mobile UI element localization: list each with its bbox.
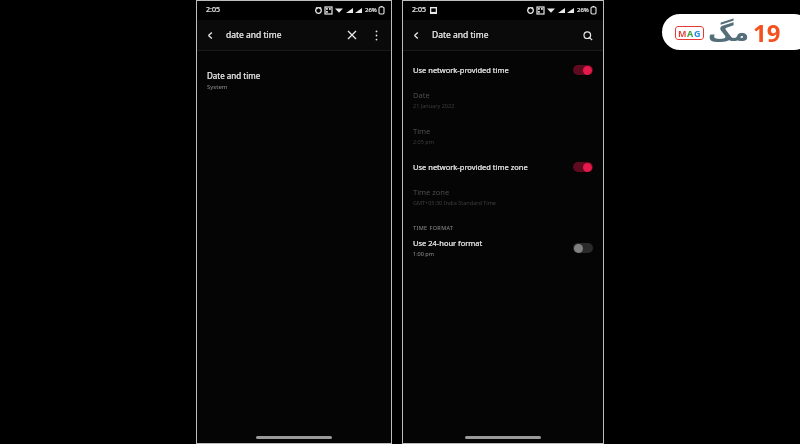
staticText: Date and time <box>432 29 489 41</box>
staticText: مگ <box>708 18 750 47</box>
button[interactable]: Toggle on <box>573 162 593 172</box>
staticText: 21 January 2022 <box>413 102 455 109</box>
staticText: 2:05 <box>206 5 220 15</box>
button[interactable]: Back <box>411 30 422 41</box>
staticText: G <box>694 27 701 39</box>
staticText: M <box>678 27 687 39</box>
button[interactable]: Time <box>402 126 604 145</box>
staticText: 2:05 <box>412 5 426 15</box>
staticText: Use network-provided time <box>413 65 573 75</box>
button[interactable]: Search <box>580 28 595 43</box>
button[interactable]: Date and time <box>196 68 392 93</box>
staticText: 2:05 pm <box>413 138 434 145</box>
staticText: 26% <box>365 6 377 14</box>
button[interactable]: Clear <box>345 28 359 42</box>
button[interactable]: Date <box>402 90 604 109</box>
button[interactable]: Toggle off <box>573 243 593 253</box>
button[interactable]: Toggle on <box>573 65 593 75</box>
button[interactable]: Use network-provided time <box>402 65 604 75</box>
staticText: System <box>207 83 228 91</box>
staticText: A <box>687 27 694 39</box>
staticText: Time <box>413 126 431 136</box>
staticText: Use 24-hour format <box>413 238 483 248</box>
staticText: Date <box>413 90 430 100</box>
button[interactable]: Time zone <box>402 187 604 206</box>
staticText: 19 <box>753 16 781 49</box>
staticText: GMT+05:30 India Standard Time <box>413 199 496 206</box>
staticText: date and time <box>226 29 282 41</box>
button[interactable]: More options <box>369 28 383 42</box>
button[interactable]: Back <box>205 30 216 41</box>
staticText: Use network-provided time zone <box>413 162 573 172</box>
staticText: TIME FORMAT <box>413 224 454 231</box>
staticText: Time zone <box>413 187 450 197</box>
button[interactable]: Use network-provided time zone <box>402 162 604 172</box>
staticText: 1:00 pm <box>413 250 434 257</box>
button[interactable]: Use 24-hour format <box>402 238 604 257</box>
staticText: Date and time <box>207 70 261 81</box>
staticText: 26% <box>577 6 589 14</box>
